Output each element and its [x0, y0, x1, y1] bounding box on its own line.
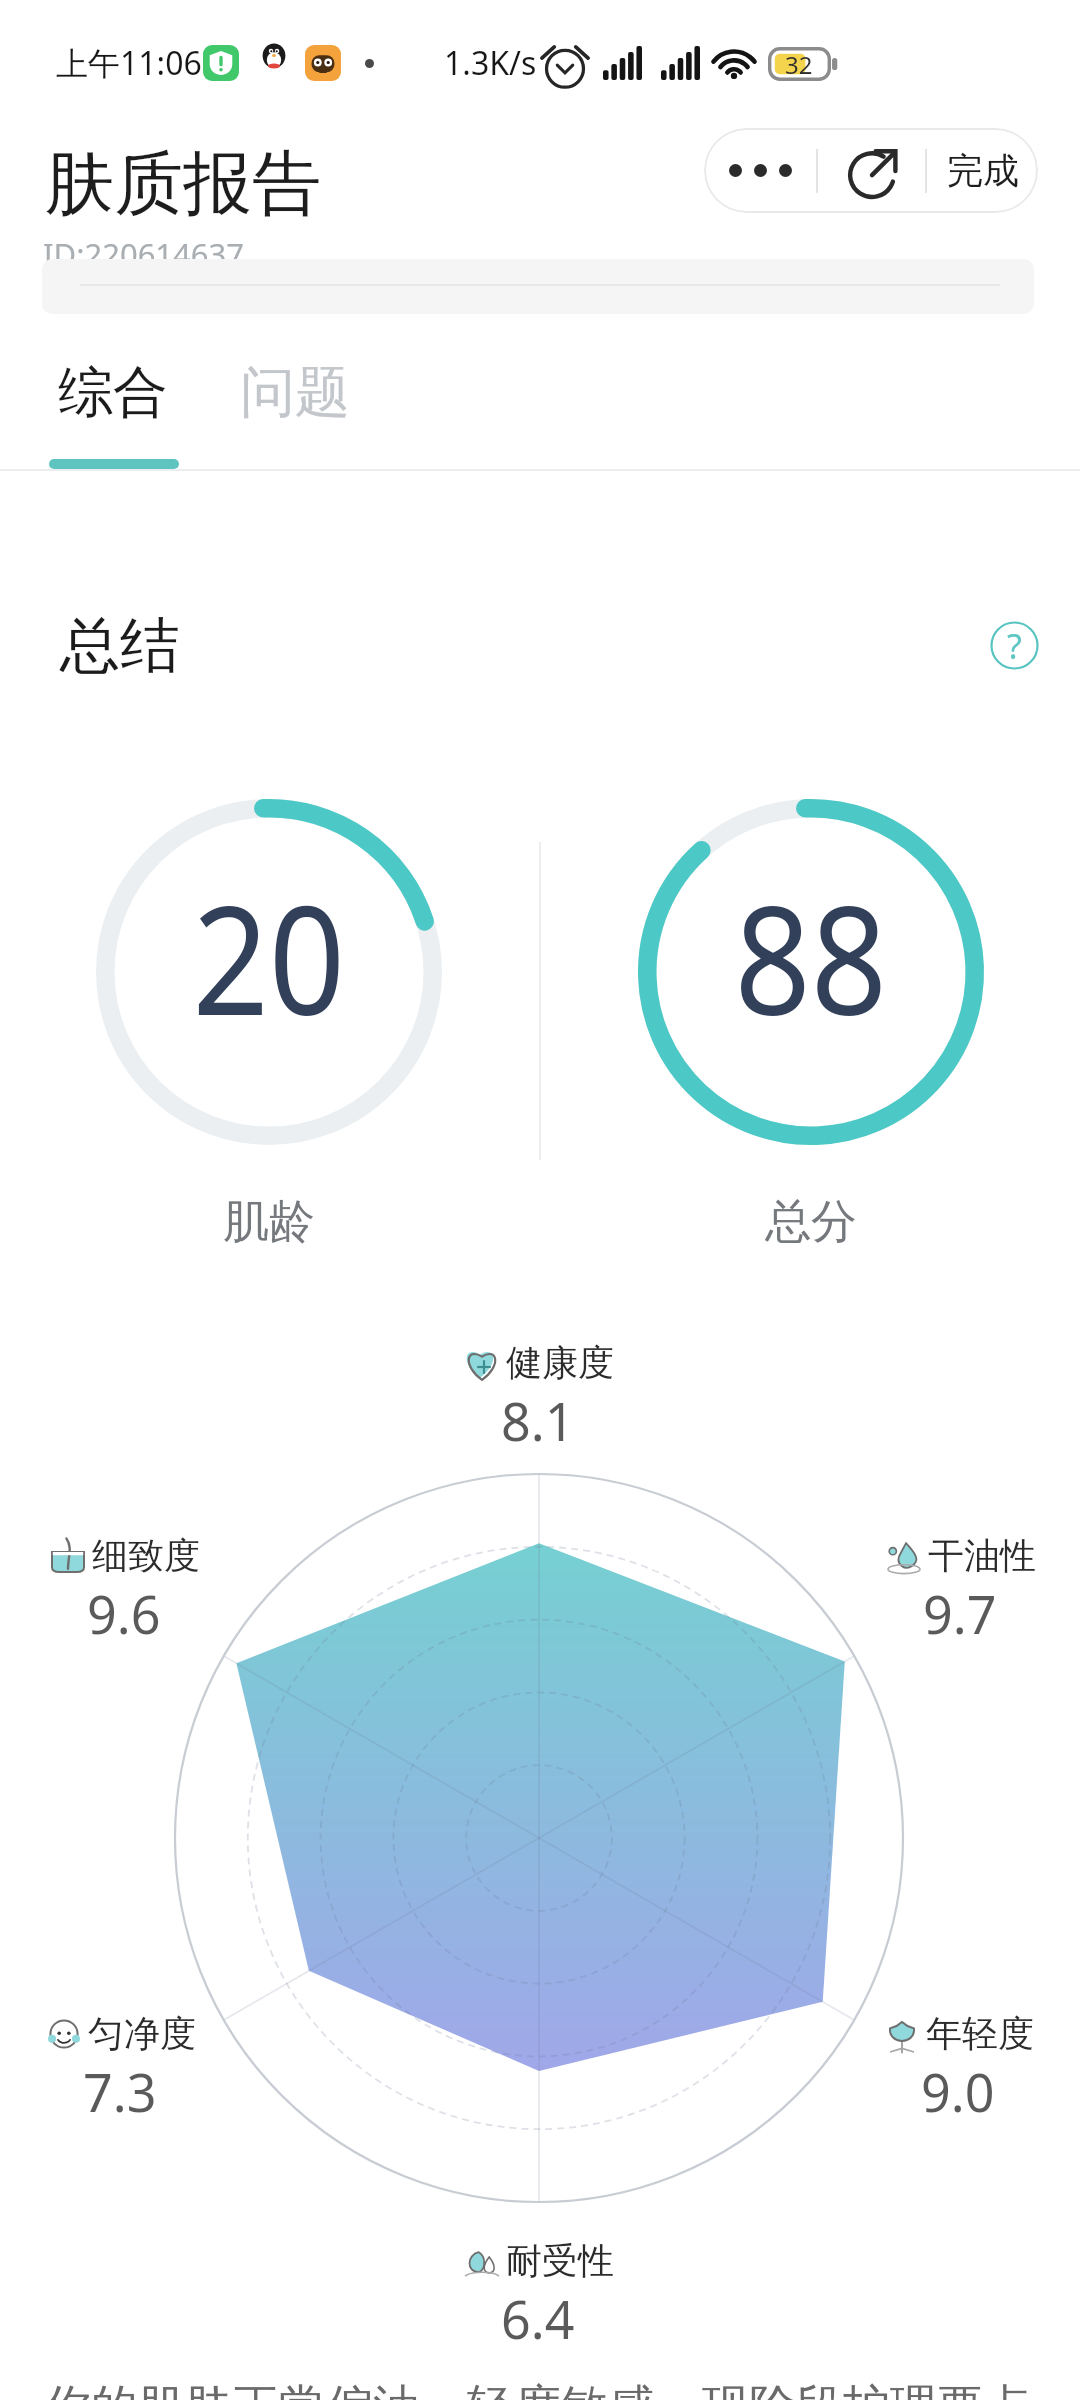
staticText: 9.7 [923, 1578, 997, 1649]
staticText: ID:220614637 [43, 233, 245, 275]
button[interactable]: 综合 [58, 358, 168, 427]
staticText: 32 [785, 48, 813, 81]
staticText: 9.6 [87, 1578, 161, 1649]
staticText: 干油性 [928, 1533, 1036, 1578]
staticText: 问题 [240, 358, 350, 427]
other: Share [846, 145, 898, 197]
staticText: 耐受性 [506, 2238, 614, 2283]
staticText: ? [1007, 623, 1022, 669]
staticText: 9.0 [921, 2056, 995, 2127]
staticText: 1.3K/s [444, 41, 537, 85]
staticText: 匀净度 [88, 2011, 196, 2056]
staticText: 综合 [58, 358, 168, 427]
staticText: 完成 [947, 148, 1019, 193]
staticText: 6.4 [501, 2283, 575, 2354]
staticText: 88 [734, 855, 888, 1059]
button[interactable]: Help [990, 621, 1039, 670]
button[interactable]: 问题 [240, 358, 350, 427]
staticText: 年轻度 [926, 2011, 1034, 2056]
staticText: 细致度 [92, 1533, 200, 1578]
staticText: 你的肌肤正常偏油，轻度敏感，现阶段护理要点 [44, 2378, 1031, 2400]
staticText: 上午11:06 [56, 41, 202, 85]
staticText: 肤质报告 [45, 141, 321, 228]
staticText: 健康度 [506, 1340, 614, 1385]
staticText: 总分 [765, 1193, 857, 1251]
staticText: 8.1 [501, 1385, 575, 1456]
staticText: 20 [192, 855, 346, 1059]
staticText: 肌龄 [223, 1193, 315, 1251]
button[interactable]: Share [704, 128, 1038, 213]
staticText: 总结 [60, 608, 180, 684]
staticText: 7.3 [83, 2056, 157, 2127]
